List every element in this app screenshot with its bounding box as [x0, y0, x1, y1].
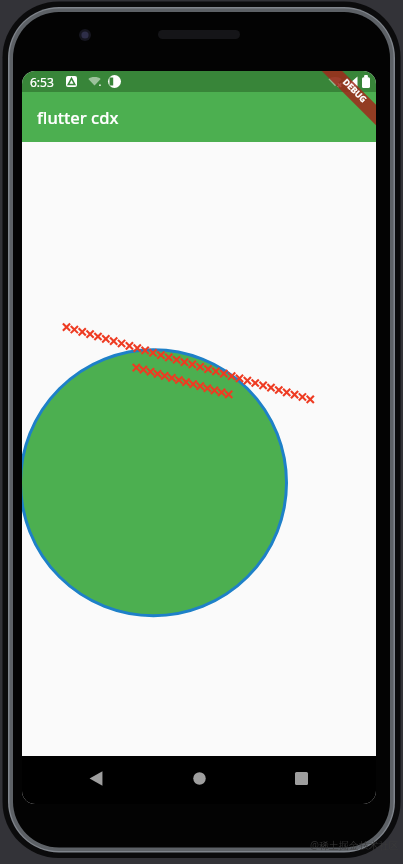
button[interactable]: Recent apps: [279, 756, 323, 800]
staticText: @稀土掘金技术社区: [310, 838, 399, 852]
button[interactable]: flutter cdx: [22, 92, 376, 142]
button[interactable]: Home: [177, 756, 221, 800]
staticText: flutter cdx: [37, 106, 119, 128]
staticText: 6:53: [30, 74, 54, 90]
button[interactable]: Back: [74, 756, 118, 800]
staticText: DEBUG: [340, 76, 370, 106]
staticText: IO: [0, 15, 14, 31]
staticText: ont: [386, 10, 403, 25]
staticText: APPOT: [2, 0, 42, 14]
